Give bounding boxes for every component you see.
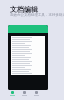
staticText: 高效办公文档处理工具，支持多格式 xyxy=(10,13,64,17)
button[interactable]: Edit xyxy=(8,91,16,96)
button[interactable]: More xyxy=(32,91,40,96)
button[interactable]: Files xyxy=(20,91,28,96)
staticText: 文档编辑 xyxy=(10,5,38,14)
button[interactable]: Document preview xyxy=(8,25,48,90)
